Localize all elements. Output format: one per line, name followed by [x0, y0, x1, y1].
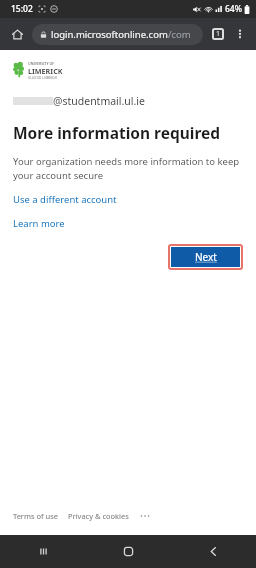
button[interactable]: Recents — [0, 535, 86, 568]
staticText: 64% — [225, 3, 242, 15]
button[interactable]: Privacy & cookies — [68, 511, 129, 521]
staticText: LIMERICK — [28, 66, 63, 76]
button[interactable]: Home — [6, 23, 28, 45]
staticText: @studentmail.ul.ie — [53, 94, 145, 108]
staticText: 15:02 — [11, 3, 33, 15]
button[interactable]: Tabs — [208, 24, 228, 44]
button[interactable]: More — [138, 511, 152, 521]
staticText: /com — [168, 28, 191, 41]
staticText: Learn more — [13, 217, 65, 230]
staticText: Your organization needs more information… — [13, 155, 243, 182]
button[interactable]: Terms of use — [13, 511, 59, 521]
button[interactable]: Learn more — [13, 217, 65, 230]
staticText: 1 — [216, 29, 221, 39]
staticText: login.microsoftonline.com — [51, 28, 168, 41]
button[interactable]: Use a different account — [13, 193, 117, 206]
staticText: Privacy & cookies — [68, 511, 129, 521]
button[interactable]: Next — [171, 247, 240, 267]
staticText: UNIVERSITY OF — [28, 61, 55, 66]
button[interactable]: login.microsoftonline.com — [32, 24, 203, 45]
staticText: More information required — [13, 122, 221, 143]
staticText: OLLSCOIL LUIMNIGH — [28, 76, 57, 80]
staticText: Use a different account — [13, 193, 117, 206]
button[interactable]: Home — [86, 535, 171, 568]
staticText: Next — [195, 250, 217, 264]
staticText: Terms of use — [13, 511, 59, 521]
button[interactable]: Back — [171, 535, 256, 568]
button[interactable]: More options — [230, 24, 250, 44]
